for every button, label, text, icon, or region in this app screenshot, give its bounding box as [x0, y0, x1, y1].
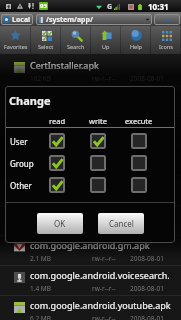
button[interactable]: com.google.android.voicesearch....	[0, 266, 181, 296]
staticText: OK	[54, 218, 66, 229]
staticText: User	[10, 136, 28, 147]
button[interactable]: Local	[1, 14, 33, 25]
staticText: com.google.android.voicesearch....	[30, 269, 171, 281]
staticText: rw-r--r--	[92, 74, 116, 83]
staticText: Change	[9, 93, 51, 108]
button[interactable]: Checked	[90, 133, 106, 149]
button[interactable]: Checked	[49, 177, 65, 193]
button[interactable]: Select	[31, 26, 61, 54]
staticText: 8.30 MB	[30, 164, 55, 173]
staticText: Up	[102, 43, 110, 50]
staticText: Other	[10, 180, 32, 191]
staticText: G	[107, 2, 113, 12]
staticText: 2008-08-01	[130, 224, 164, 233]
button[interactable]: /system/app/	[36, 14, 152, 25]
button[interactable]: CertInstaller.apk	[0, 56, 181, 86]
staticText: com.google.android.youtube.apk	[30, 299, 171, 311]
staticText: rw-r--r--	[92, 314, 116, 320]
staticText: com.google.android.apps.maps.apk	[30, 209, 171, 221]
staticText: rw-r--r--	[92, 224, 116, 233]
staticText: 162 KB	[30, 74, 52, 83]
button[interactable]: Cancel	[98, 213, 144, 234]
staticText: 5.61 MB	[30, 224, 55, 233]
staticText: 93	[40, 2, 47, 10]
staticText: /system/app/	[46, 15, 145, 25]
button[interactable]: OK	[37, 213, 83, 234]
button[interactable]: Minimize	[154, 14, 180, 25]
button[interactable]: com.google.android.apps.docs.apk	[0, 116, 181, 146]
staticText: Local	[12, 15, 31, 25]
staticText: 2008-08-01	[130, 74, 164, 83]
staticText: 2008-08-01	[130, 284, 164, 293]
staticText: 2008-08-01	[130, 314, 164, 320]
staticText: 2008-08-01	[130, 254, 164, 263]
staticText: 34.2 MB	[30, 104, 55, 113]
staticText: rw-r--r--	[92, 254, 116, 263]
button[interactable]: Unchecked	[131, 155, 147, 171]
staticText: read	[49, 116, 65, 126]
staticText: 2008-08-01	[130, 164, 164, 173]
button[interactable]: Checked	[49, 155, 65, 171]
button[interactable]: com.google.android.youtube.apk	[0, 296, 181, 320]
staticText: Group	[10, 158, 34, 169]
staticText: 2008-08-01	[130, 194, 164, 203]
staticText: Cancel	[109, 218, 134, 229]
staticText: 10:31	[148, 1, 169, 12]
staticText: Search	[67, 43, 85, 50]
staticText: 1.4 MB	[30, 284, 51, 293]
staticText: com.google.android.apps.docs.apk	[30, 119, 171, 131]
button[interactable]: com.google.android.apps.maps.apk	[0, 206, 181, 236]
staticText: rw-r--r--	[92, 284, 116, 293]
staticText: com.android.chrome.apk	[30, 89, 137, 101]
staticText: Icons	[159, 43, 173, 50]
button[interactable]: Favorites	[0, 26, 31, 54]
staticText: Help	[130, 43, 142, 50]
button[interactable]: Icons	[151, 26, 181, 54]
button[interactable]: Unchecked	[131, 177, 147, 193]
staticText: CertInstaller.apk	[30, 59, 99, 71]
staticText: Favorites	[4, 43, 28, 50]
button[interactable]: Unchecked	[90, 155, 106, 171]
staticText: rw-r--r--	[92, 134, 116, 143]
staticText: rw-r--r--	[92, 164, 116, 173]
button[interactable]: Help	[121, 26, 151, 54]
staticText: com.google.android.apps.magazines	[30, 149, 171, 161]
button[interactable]: Search	[61, 26, 91, 54]
button[interactable]: Unchecked	[131, 133, 147, 149]
staticText: com.google.android.gm.apk	[30, 239, 150, 251]
staticText: 6.2 MB	[30, 314, 51, 320]
button[interactable]: Up	[91, 26, 121, 54]
staticText: 2008-08-01	[130, 134, 164, 143]
button[interactable]: com.google.android.gm.apk	[0, 236, 181, 266]
staticText: rw-r--r--	[92, 194, 116, 203]
staticText: Select	[38, 43, 54, 50]
button[interactable]: com.google.android.apps.plus.apk	[0, 176, 181, 206]
staticText: 9.41 MB	[30, 194, 55, 203]
staticText: com.google.android.apps.plus.apk	[30, 179, 171, 191]
button[interactable]: Unchecked	[90, 177, 106, 193]
staticText: 2.1 MB	[30, 254, 51, 263]
button[interactable]: com.google.android.apps.magazines	[0, 146, 181, 176]
staticText: write	[89, 116, 107, 126]
button[interactable]: com.android.chrome.apk	[0, 86, 181, 116]
staticText: 12.4 MB	[30, 134, 55, 143]
staticText: execute	[125, 116, 153, 126]
button[interactable]: Checked	[49, 133, 65, 149]
